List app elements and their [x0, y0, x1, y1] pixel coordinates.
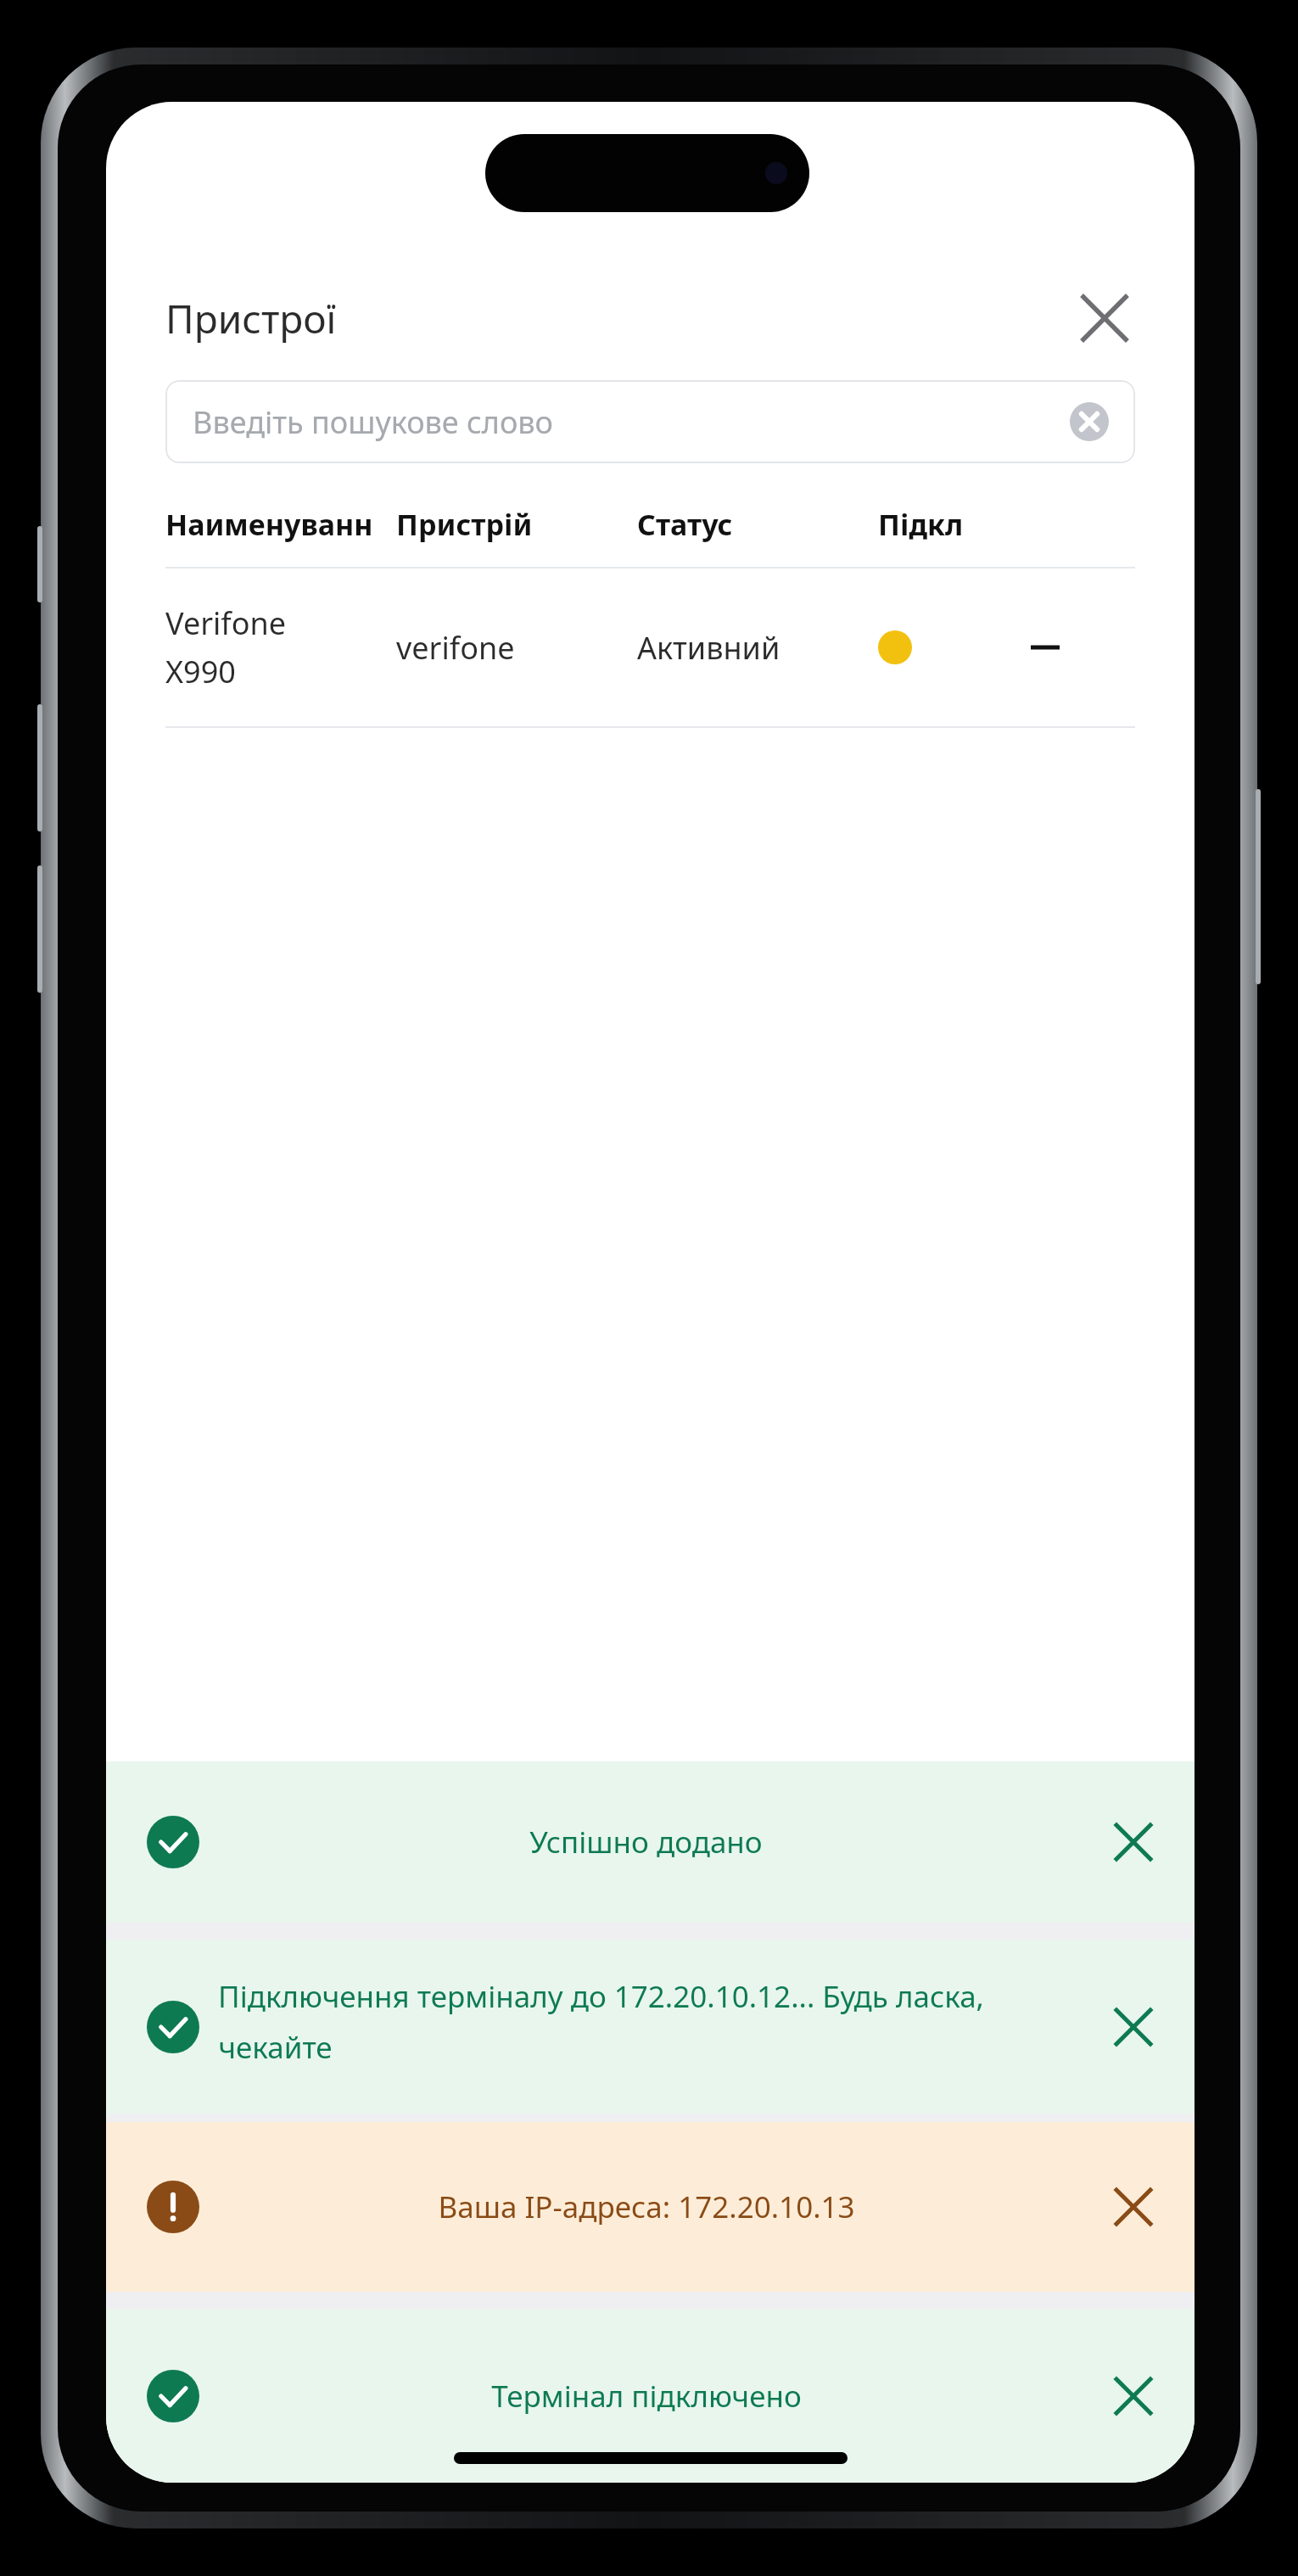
staticText: verifone: [396, 627, 637, 669]
button[interactable]: Verifone: [165, 568, 1135, 726]
button[interactable]: Очистити: [1067, 400, 1111, 444]
button[interactable]: Введіть пошукове слово: [165, 380, 1135, 463]
staticText: Активний: [637, 627, 878, 669]
staticText: чекайте: [218, 2027, 333, 2068]
button[interactable]: Закрити: [1064, 277, 1145, 359]
button[interactable]: Підключення терміналу до 172.20.10.12...…: [106, 1940, 1194, 2114]
staticText: Наименуванн: [165, 505, 396, 544]
staticText: Verifone: [165, 602, 287, 644]
staticText: Успішно додано: [529, 1822, 763, 1862]
staticText: Статус: [637, 505, 878, 544]
staticText: Термінал підключено: [491, 2376, 802, 2416]
staticText: Пристрої: [165, 292, 337, 345]
button[interactable]: Термінал підключено: [106, 2309, 1194, 2483]
staticText: Введіть пошукове слово: [193, 401, 553, 443]
staticText: Підкл: [878, 505, 964, 544]
button[interactable]: Ваша IP-адреса: 172.20.10.13: [106, 2122, 1194, 2292]
staticText: Ваша IP-адреса: 172.20.10.13: [438, 2187, 855, 2227]
button[interactable]: Закрити сповіщення: [1093, 1986, 1174, 2068]
staticText: Підключення терміналу до 172.20.10.12...…: [218, 1976, 984, 2017]
button[interactable]: Успішно додано: [106, 1761, 1194, 1923]
button[interactable]: Закрити сповіщення: [1093, 2166, 1174, 2248]
staticText: X990: [165, 651, 236, 692]
button[interactable]: Закрити сповіщення: [1093, 2355, 1174, 2437]
staticText: Пристрій: [396, 505, 637, 544]
button[interactable]: Закрити сповіщення: [1093, 1801, 1174, 1883]
